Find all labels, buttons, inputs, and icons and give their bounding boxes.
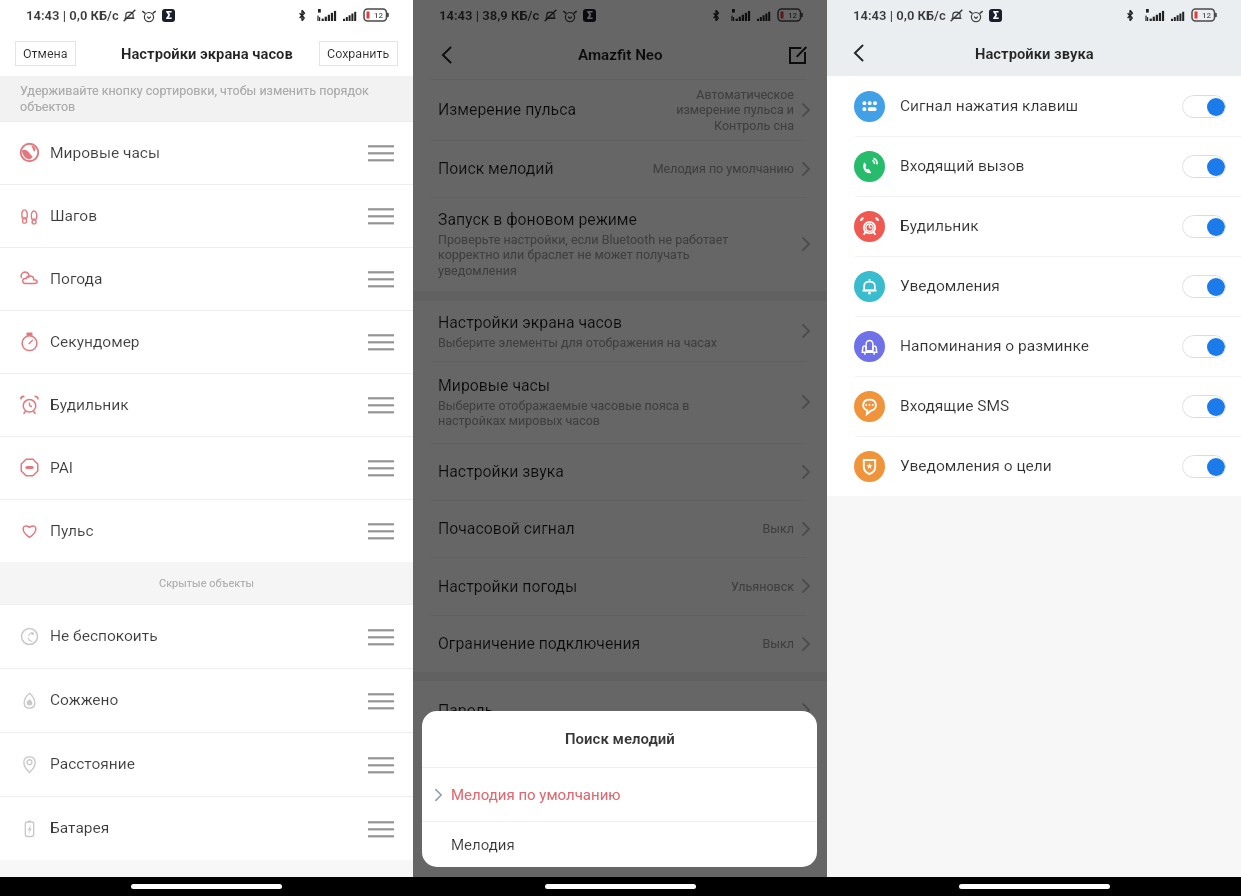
staticText: Σ <box>587 10 593 22</box>
staticText: Amazfit Neo <box>578 46 663 64</box>
staticText: Выкл <box>762 636 794 651</box>
staticText: 14:43 | 38,9 КБ/с <box>439 8 540 23</box>
staticText: 14:43 | 0,0 КБ/с <box>853 8 946 23</box>
staticText: Погода <box>50 270 103 288</box>
button[interactable]: Back <box>839 34 877 72</box>
button[interactable]: Back <box>427 36 465 74</box>
button[interactable]: Уведомления о цели <box>827 436 1241 496</box>
button[interactable]: Мелодия по умолчанию <box>422 768 817 821</box>
staticText: Ульяновск <box>730 579 794 594</box>
staticText: Напоминания о разминке <box>900 337 1089 355</box>
staticText: Автоматическое измерение пульса и Контро… <box>646 87 794 133</box>
button[interactable]: Toggle Уведомления <box>1182 275 1226 298</box>
button[interactable]: Сохранить <box>319 41 398 66</box>
staticText: Не беспокоить <box>50 627 158 645</box>
button[interactable]: Toggle Входящий вызов <box>1182 155 1226 178</box>
button[interactable]: Батарея <box>0 796 413 860</box>
staticText: Будильник <box>50 396 129 414</box>
button[interactable]: Пульс <box>0 499 413 562</box>
button[interactable]: Измерение пульса <box>413 79 827 140</box>
staticText: Σ <box>993 10 999 22</box>
staticText: 14:43 | 0,0 КБ/с <box>26 8 119 23</box>
staticText: Уведомления <box>900 277 1000 295</box>
staticText: Запуск в фоновом режиме <box>438 210 637 229</box>
staticText: Выкл <box>762 521 794 536</box>
button[interactable]: Настройки погоды <box>413 557 827 615</box>
staticText: Проверьте настройки, если Bluetooth не р… <box>438 232 757 278</box>
button[interactable]: Мировые часы <box>0 121 413 184</box>
button[interactable]: Входящий вызов <box>827 136 1241 196</box>
staticText: Будильник <box>900 217 979 235</box>
staticText: Сохранить <box>327 46 390 61</box>
staticText: Мировые часы <box>438 376 551 395</box>
button[interactable]: Уведомления <box>827 256 1241 316</box>
staticText: Пульс <box>50 522 94 540</box>
button[interactable]: Toggle Будильник <box>1182 215 1226 238</box>
staticText: Мировые часы <box>50 144 160 162</box>
button[interactable]: Toggle Сигнал нажатия клавиш <box>1182 95 1226 118</box>
staticText: Шагов <box>50 207 98 225</box>
staticText: Поиск мелодий <box>438 159 554 178</box>
button[interactable]: Toggle Уведомления о цели <box>1182 455 1226 478</box>
button[interactable]: Не беспокоить <box>0 604 413 668</box>
button[interactable]: Toggle Напоминания о разминке <box>1182 335 1226 358</box>
staticText: PAI <box>50 459 74 477</box>
button[interactable]: Отмена <box>15 41 76 66</box>
staticText: Σ <box>166 10 172 22</box>
staticText: Ограничение подключения <box>438 634 641 653</box>
staticText: 12 <box>788 11 798 20</box>
staticText: Настройки экрана часов <box>121 45 293 62</box>
staticText: Сожжено <box>50 691 119 709</box>
staticText: Уведомления о цели <box>900 457 1052 475</box>
staticText: Сигнал нажатия клавиш <box>900 97 1079 115</box>
staticText: 12 <box>1202 11 1212 20</box>
staticText: 12 <box>374 11 384 20</box>
button[interactable]: Edit <box>778 36 816 74</box>
staticText: Пароль <box>438 701 494 720</box>
button[interactable]: Мировые часы <box>413 361 827 443</box>
staticText: Почасовой сигнал <box>438 519 575 538</box>
staticText: Батарея <box>50 819 110 837</box>
button[interactable]: PAI <box>0 436 413 499</box>
staticText: Настройки звука <box>438 462 564 481</box>
staticText: Выберите отображаемые часовые пояса в на… <box>438 398 757 428</box>
button[interactable]: Будильник <box>827 196 1241 256</box>
staticText: Мелодия <box>451 836 515 854</box>
staticText: Измерение пульса <box>438 100 576 119</box>
button[interactable]: Запуск в фоновом режиме <box>413 197 827 291</box>
staticText: Входящие SMS <box>900 397 1010 415</box>
staticText: Отмена <box>23 46 68 61</box>
staticText: Настройки погоды <box>438 577 578 596</box>
button[interactable]: Сожжено <box>0 668 413 732</box>
staticText: Расстояние <box>50 755 135 773</box>
button[interactable]: Почасовой сигнал <box>413 500 827 557</box>
button[interactable]: Ограничение подключения <box>413 615 827 672</box>
staticText: Мелодия по умолчанию <box>451 786 621 804</box>
staticText: Мелодия по умолчанию <box>652 161 794 176</box>
staticText: Настройки экрана часов <box>438 313 622 332</box>
button[interactable]: Секундомер <box>0 310 413 373</box>
button[interactable]: Входящие SMS <box>827 376 1241 436</box>
staticText: Секундомер <box>50 333 140 351</box>
staticText: Скрытые объекты <box>159 577 255 590</box>
staticText: Выберите элементы для отображения на час… <box>438 335 717 350</box>
button[interactable]: Напоминания о разминке <box>827 316 1241 376</box>
button[interactable]: Будильник <box>0 373 413 436</box>
button[interactable]: Погода <box>0 247 413 310</box>
button[interactable]: Настройки экрана часов <box>413 301 827 361</box>
button[interactable]: Поиск мелодий <box>413 140 827 197</box>
button[interactable]: Пароль <box>413 681 827 739</box>
button[interactable]: Расстояние <box>0 732 413 796</box>
staticText: Настройки звука <box>975 45 1094 62</box>
button[interactable]: Мелодия <box>422 822 817 867</box>
staticText: Удерживайте кнопку сортировки, чтобы изм… <box>20 83 393 115</box>
staticText: Поиск мелодий <box>565 730 675 748</box>
button[interactable]: Настройки звука <box>413 443 827 500</box>
button[interactable]: Сигнал нажатия клавиш <box>827 76 1241 136</box>
staticText: Входящий вызов <box>900 157 1025 175</box>
button[interactable]: Toggle Входящие SMS <box>1182 395 1226 418</box>
button[interactable]: Шагов <box>0 184 413 247</box>
